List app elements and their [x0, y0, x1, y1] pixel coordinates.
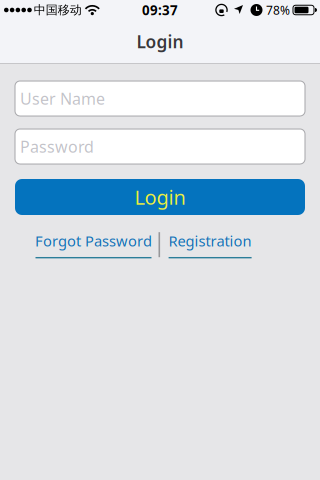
- button[interactable]: Login: [15, 179, 305, 215]
- staticText: 09:37: [142, 1, 178, 19]
- staticText: 中国移动: [34, 3, 82, 17]
- button[interactable]: Forgot Password: [35, 231, 152, 258]
- staticText: 78%: [266, 2, 290, 18]
- button[interactable]: Registration: [169, 231, 252, 258]
- staticText: User Name: [20, 88, 105, 109]
- textField[interactable]: User Name: [15, 81, 305, 116]
- staticText: Login: [134, 184, 185, 210]
- staticText: Password: [20, 136, 94, 157]
- staticText: Login: [136, 30, 183, 53]
- staticText: Registration: [169, 231, 252, 250]
- staticText: Forgot Password: [35, 231, 152, 250]
- textField[interactable]: Password: [15, 129, 305, 164]
